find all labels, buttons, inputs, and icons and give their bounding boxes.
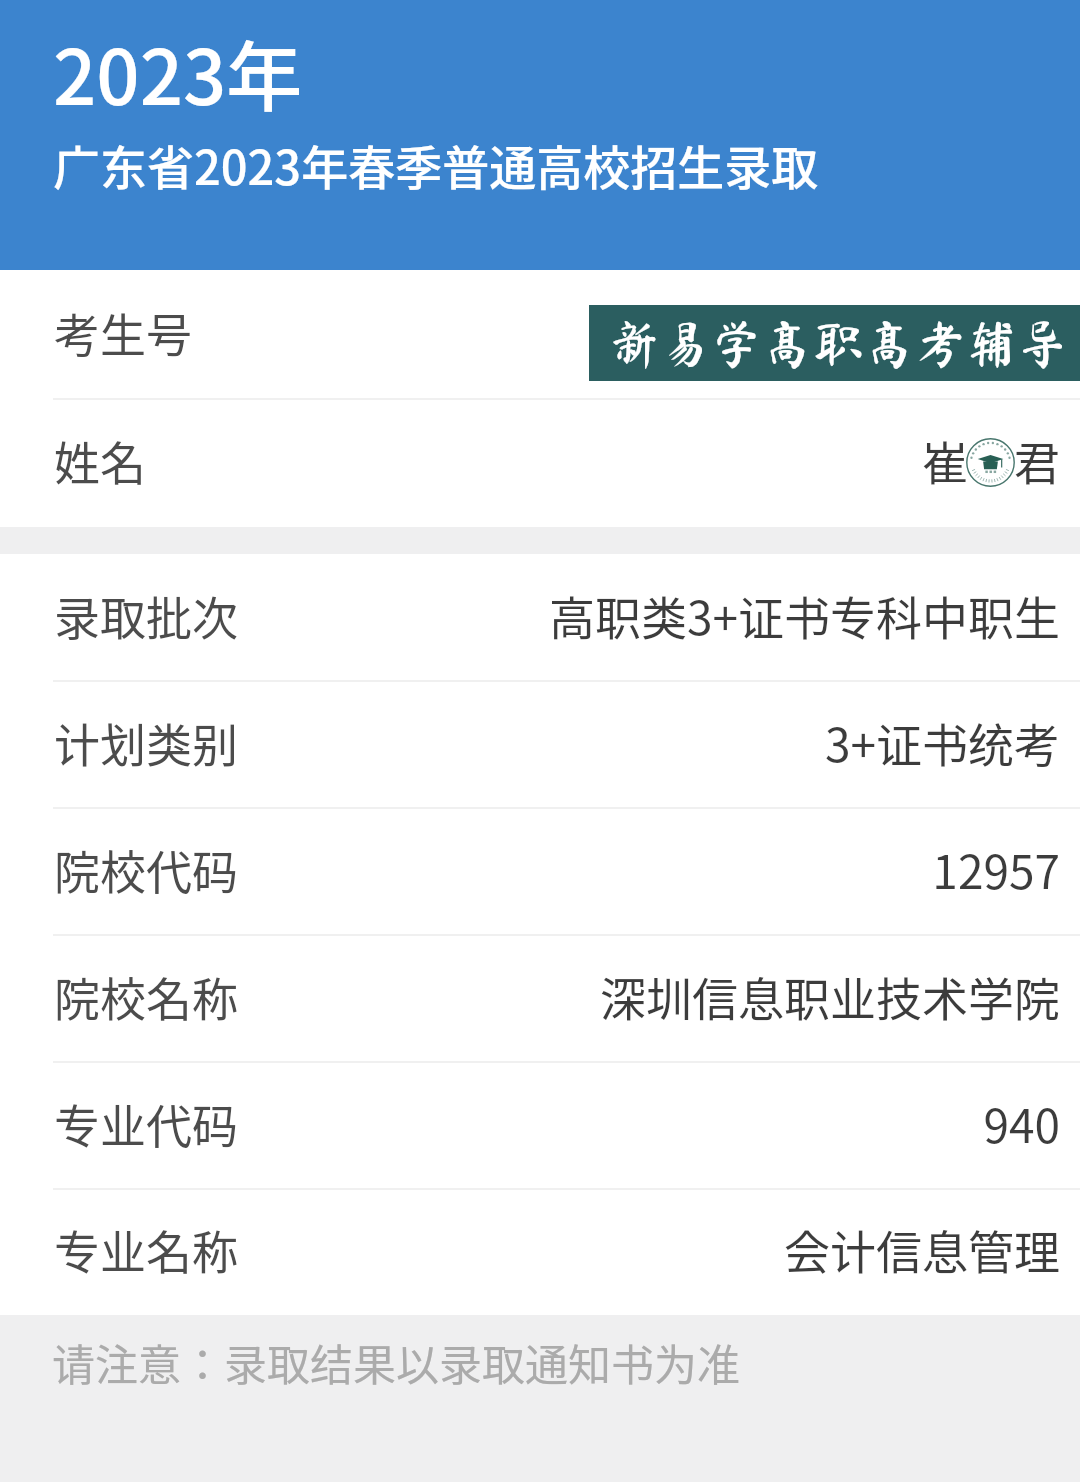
staticText: 专业名称 [54,1216,238,1283]
staticText: 高职类3+证书专科中职生 [548,582,1060,649]
staticText: 姓名 [54,427,146,494]
other: School seal [966,438,1015,487]
staticText: 考生号 [54,299,192,366]
staticText: 请注意：录取结果以录取通知书为准 [52,1331,740,1393]
staticText: 12957 [932,836,1060,903]
button[interactable]: 录取批次 [0,554,1080,682]
staticText: 录取批次 [54,582,238,649]
staticText: 深圳信息职业技术学院 [600,963,1060,1030]
staticText: 新易学高职高考辅导 [609,318,1069,369]
staticText: 会计信息管理 [784,1216,1060,1283]
staticText: 广东省2023年春季普通高校招生录取 [53,130,819,198]
staticText: 院校名称 [54,963,238,1030]
staticText: 专业代码 [54,1090,238,1157]
staticText: 院校代码 [54,836,238,903]
staticText: 崔 君 [922,427,1060,494]
button[interactable]: 专业名称 [0,1190,1080,1315]
staticText: 2023年 [53,17,303,127]
button[interactable]: 新易学高职高考辅导 [589,305,1080,381]
button[interactable]: 专业代码 [0,1063,1080,1190]
button[interactable]: 院校名称 [0,936,1080,1063]
button[interactable]: 姓名 [0,400,1080,527]
staticText: 计划类别 [54,709,238,776]
staticText: 3+证书统考 [824,709,1060,776]
staticText: 940 [983,1090,1060,1157]
button[interactable]: 计划类别 [0,682,1080,809]
button[interactable]: 院校代码 [0,809,1080,936]
button[interactable]: 考生号 [0,270,1080,400]
